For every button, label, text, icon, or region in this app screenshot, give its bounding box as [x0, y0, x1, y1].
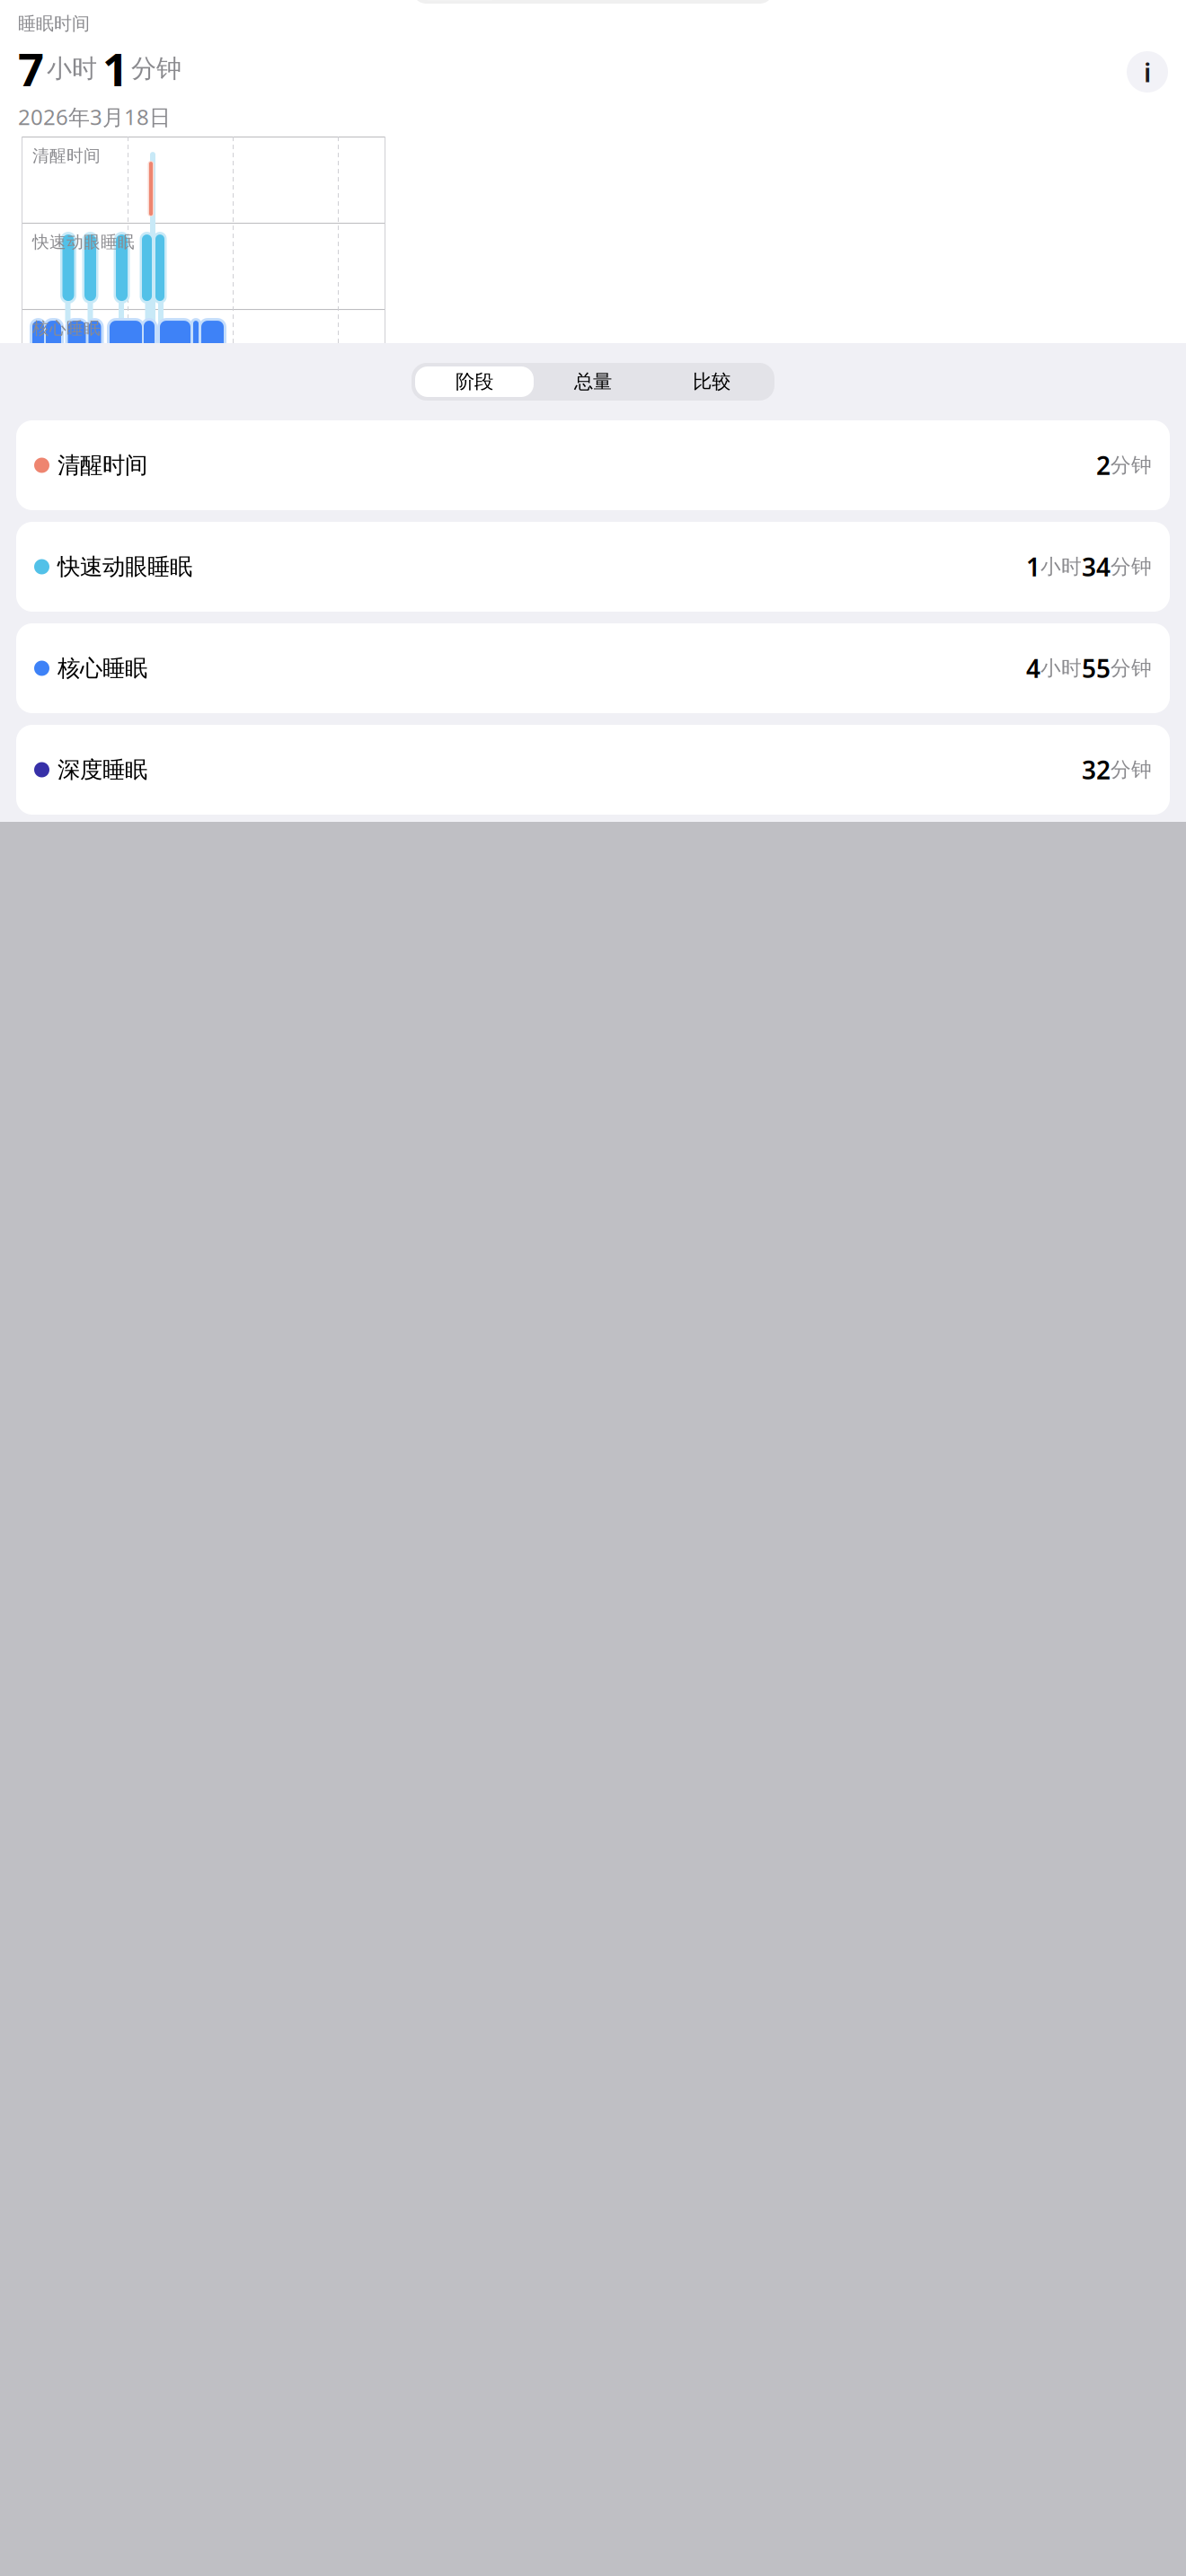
staticText: 深度睡眠 [58, 756, 147, 784]
staticText: 总量 [574, 370, 612, 393]
staticText: 阶段 [456, 370, 493, 393]
button[interactable]: 比较 [652, 363, 771, 401]
staticText: 清醒时间 [32, 146, 101, 166]
staticText: 快速动眼睡眠 [58, 553, 192, 581]
button[interactable]: 6个月 [682, 0, 771, 4]
staticText: 55 [1082, 652, 1111, 685]
staticText: 深度睡眠 [32, 404, 101, 425]
staticText: 核心睡眠 [58, 654, 147, 682]
staticText: 小时 [47, 53, 97, 84]
staticText: 4 [1026, 652, 1040, 685]
staticText: 7 [18, 38, 44, 99]
staticText: 1 [102, 38, 128, 99]
staticText: 34 [1082, 550, 1111, 583]
button[interactable]: 总量 [534, 363, 652, 401]
button[interactable]: 日 [415, 0, 504, 4]
staticText: 清醒时间 [58, 451, 147, 479]
staticText: 睡眠时间 [18, 13, 90, 35]
staticText: 小时 [1040, 554, 1082, 579]
staticText: 比较 [693, 370, 730, 393]
button[interactable]: 阶段 [415, 363, 534, 401]
staticText: 分钟 [1111, 656, 1152, 681]
staticText: 1 [1026, 550, 1040, 583]
staticText: 07:48 [32, 23, 104, 60]
staticText: 核心睡眠 [32, 318, 101, 339]
button[interactable]: 快速动眼睡眠 [16, 522, 1170, 612]
staticText: 快速动眼睡眠 [32, 232, 135, 252]
staticText: 2026年3月18日 [18, 102, 171, 131]
staticText: 分钟 [1111, 554, 1152, 579]
staticText: 2 [1096, 449, 1111, 482]
staticText: 分钟 [1111, 757, 1152, 782]
button[interactable]: 信息 [1127, 51, 1168, 93]
button[interactable]: 核心睡眠 [16, 623, 1170, 713]
staticText: 分钟 [131, 53, 181, 84]
staticText: i [1144, 54, 1151, 89]
staticText: 小时 [1040, 656, 1082, 681]
staticText: 分钟 [1111, 453, 1152, 478]
button[interactable]: 清醒时间 [16, 420, 1170, 510]
staticText: 32 [1082, 753, 1111, 786]
button[interactable]: 深度睡眠 [16, 725, 1170, 815]
